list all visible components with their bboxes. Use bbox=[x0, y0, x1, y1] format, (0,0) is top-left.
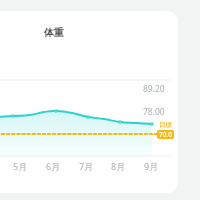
button[interactable]: Weight chart card bbox=[0, 0, 200, 200]
button[interactable]: 70.0 bbox=[157, 130, 174, 139]
staticText: 9月 bbox=[144, 160, 159, 172]
staticText: 体重 bbox=[44, 26, 64, 39]
staticText: 78.00 bbox=[143, 106, 165, 118]
staticText: 7月 bbox=[79, 160, 94, 172]
staticText: 8月 bbox=[111, 160, 126, 172]
staticText: 目標 bbox=[159, 121, 172, 129]
staticText: 89.20 bbox=[143, 83, 165, 95]
staticText: 6月 bbox=[46, 160, 61, 172]
staticText: 5月 bbox=[13, 160, 28, 172]
staticText: 70.0 bbox=[159, 130, 172, 139]
